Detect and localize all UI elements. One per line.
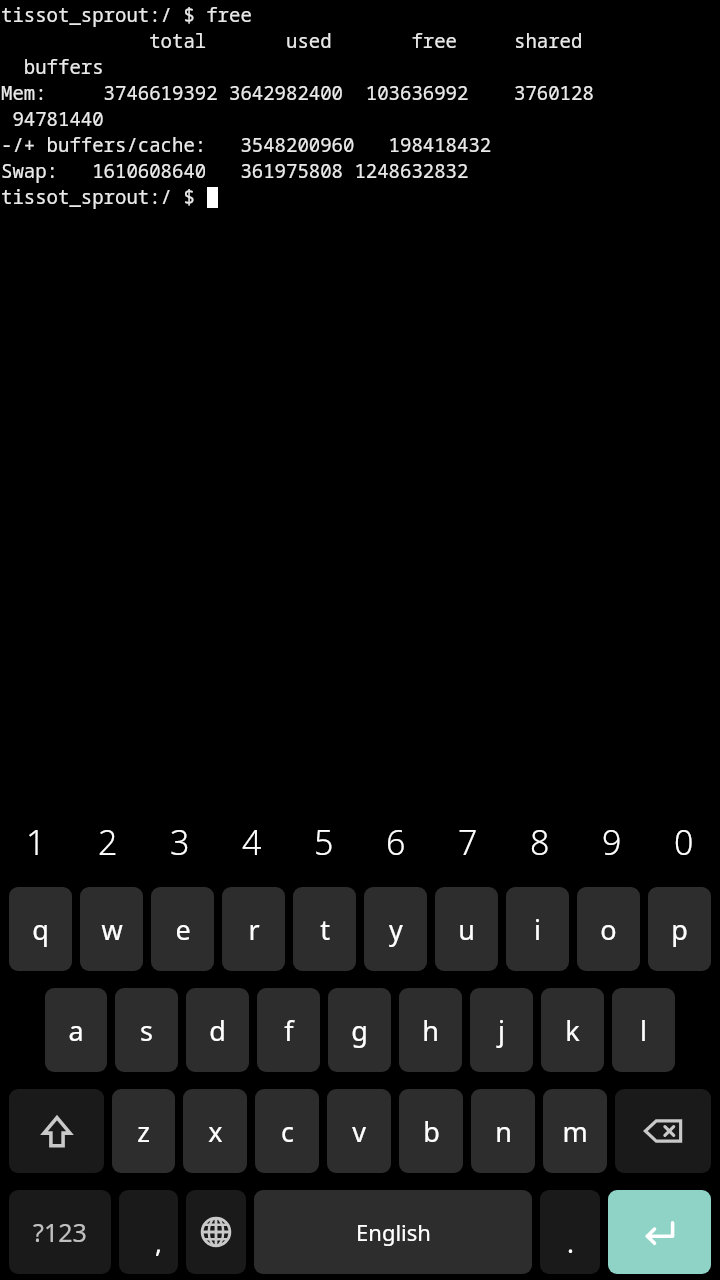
staticText: total used free shared [1, 28, 720, 54]
staticText: 0 [674, 819, 694, 865]
staticText: 2 [98, 819, 118, 865]
button[interactable]: m [543, 1089, 607, 1173]
staticText: Mem: 3746619392 3642982400 103636992 376… [1, 80, 720, 106]
button[interactable]: . [540, 1190, 600, 1274]
staticText: . [567, 1225, 574, 1260]
staticText: t [320, 911, 330, 948]
staticText: 1 [26, 819, 46, 865]
staticText: b [423, 1113, 440, 1150]
button[interactable]: b [399, 1089, 463, 1173]
button[interactable]: 1 [0, 805, 72, 879]
button[interactable]: l [612, 988, 675, 1072]
staticText: y [389, 911, 403, 948]
staticText: buffers [1, 54, 720, 80]
staticText: 8 [530, 819, 550, 865]
staticText: English [356, 1217, 431, 1247]
button[interactable]: English [254, 1190, 532, 1274]
button[interactable]: r [222, 887, 285, 971]
staticText: s [140, 1012, 153, 1049]
button[interactable]: j [470, 988, 533, 1072]
staticText: j [498, 1012, 505, 1049]
staticText: i [534, 911, 541, 948]
button[interactable]: k [541, 988, 604, 1072]
staticText: g [351, 1012, 368, 1049]
staticText: e [175, 911, 191, 948]
staticText: k [565, 1012, 580, 1049]
staticText: 7 [458, 819, 478, 865]
button[interactable]: , [119, 1190, 178, 1274]
button[interactable]: Change language [186, 1190, 246, 1274]
staticText: c [281, 1113, 294, 1150]
staticText: o [600, 911, 617, 948]
button[interactable]: Enter [608, 1190, 711, 1274]
button[interactable]: x [183, 1089, 247, 1173]
staticText: Swap: 1610608640 361975808 1248632832 [1, 158, 720, 184]
staticText: tissot_sprout:/ $ free [1, 2, 720, 28]
button[interactable]: q [9, 887, 72, 971]
button[interactable]: n [471, 1089, 535, 1173]
staticText: 6 [386, 819, 406, 865]
button[interactable]: e [151, 887, 214, 971]
staticText: n [495, 1113, 512, 1150]
button[interactable]: f [257, 988, 320, 1072]
staticText: -/+ buffers/cache: 3548200960 198418432 [1, 132, 720, 158]
button[interactable]: 9 [576, 805, 648, 879]
staticText: l [640, 1012, 647, 1049]
staticText: v [352, 1113, 366, 1150]
staticText: q [32, 911, 49, 948]
staticText: , [155, 1225, 162, 1260]
button[interactable]: 4 [216, 805, 288, 879]
staticText: x [208, 1113, 223, 1150]
staticText: u [458, 911, 475, 948]
button[interactable]: h [399, 988, 462, 1072]
button[interactable]: 8 [504, 805, 576, 879]
button[interactable]: y [364, 887, 427, 971]
button[interactable]: t [293, 887, 356, 971]
staticText: tissot_sprout:/ $ [1, 184, 207, 210]
button[interactable]: c [255, 1089, 319, 1173]
staticText: f [284, 1012, 294, 1049]
button[interactable]: Shift [9, 1089, 104, 1173]
staticText: 4 [242, 819, 262, 865]
button[interactable]: a [45, 988, 107, 1072]
button[interactable]: w [80, 887, 143, 971]
button[interactable]: v [327, 1089, 391, 1173]
staticText: 9 [602, 819, 622, 865]
button[interactable]: 2 [72, 805, 144, 879]
staticText: a [68, 1012, 84, 1049]
button[interactable]: i [506, 887, 569, 971]
button[interactable]: u [435, 887, 498, 971]
staticText: 5 [314, 819, 334, 865]
staticText: z [137, 1113, 150, 1150]
staticText: p [671, 911, 688, 948]
staticText: 94781440 [1, 106, 720, 132]
staticText: h [422, 1012, 439, 1049]
button[interactable]: z [112, 1089, 175, 1173]
button[interactable]: s [115, 988, 178, 1072]
button[interactable]: 6 [360, 805, 432, 879]
button[interactable]: o [577, 887, 640, 971]
staticText: r [248, 911, 260, 948]
staticText: ?123 [33, 1215, 87, 1249]
staticText: w [101, 911, 123, 948]
button[interactable]: g [328, 988, 391, 1072]
button[interactable]: 3 [144, 805, 216, 879]
button[interactable]: p [648, 887, 711, 971]
button[interactable]: ?123 [9, 1190, 111, 1274]
button[interactable]: 0 [648, 805, 720, 879]
staticText: m [562, 1113, 588, 1150]
button[interactable]: d [186, 988, 249, 1072]
staticText: 3 [170, 819, 190, 865]
button[interactable]: Backspace [615, 1089, 711, 1173]
staticText: d [209, 1012, 226, 1049]
button[interactable]: 7 [432, 805, 504, 879]
button[interactable]: 5 [288, 805, 360, 879]
